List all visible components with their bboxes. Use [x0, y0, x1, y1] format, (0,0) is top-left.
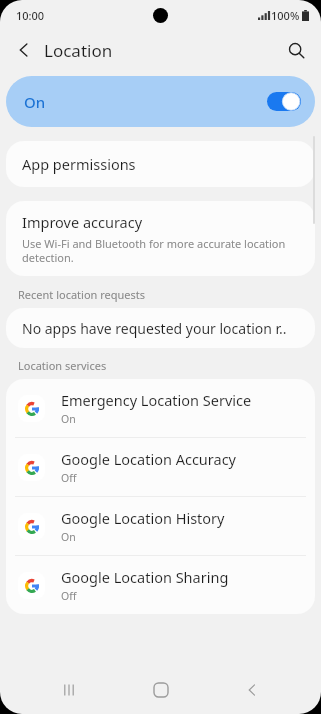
- staticText: On: [61, 530, 76, 544]
- button[interactable]: No apps have requested your location r..: [6, 308, 315, 348]
- staticText: Emergency Location Service: [61, 390, 252, 410]
- button[interactable]: Back: [6, 32, 42, 68]
- staticText: Recent location requests: [18, 287, 146, 302]
- staticText: Off: [61, 471, 77, 485]
- button[interactable]: Location on toggle: [267, 92, 301, 111]
- staticText: Location: [44, 39, 113, 62]
- button[interactable]: Home: [138, 667, 184, 713]
- button[interactable]: Improve accuracy: [6, 201, 315, 276]
- staticText: Location services: [18, 358, 107, 373]
- staticText: Use Wi-Fi and Bluetooth for more accurat…: [22, 236, 301, 265]
- button[interactable]: Recent apps: [46, 667, 92, 713]
- staticText: Improve accuracy: [22, 212, 143, 232]
- button[interactable]: Emergency Location Service: [6, 379, 315, 437]
- button[interactable]: Google Location History: [6, 497, 315, 555]
- button[interactable]: Back: [229, 667, 275, 713]
- button[interactable]: Google Location Sharing: [6, 556, 315, 614]
- staticText: Off: [61, 589, 77, 603]
- staticText: 10:00: [16, 8, 45, 23]
- staticText: On: [24, 92, 46, 112]
- staticText: No apps have requested your location r..: [22, 319, 287, 338]
- staticText: App permissions: [22, 154, 136, 174]
- button[interactable]: Search: [277, 31, 315, 69]
- staticText: Google Location Accuracy: [61, 449, 236, 469]
- staticText: Google Location Sharing: [61, 567, 229, 587]
- button[interactable]: On: [6, 76, 315, 127]
- button[interactable]: App permissions: [6, 141, 315, 187]
- button[interactable]: Google Location Accuracy: [6, 438, 315, 496]
- staticText: On: [61, 412, 76, 426]
- staticText: 100%: [271, 8, 300, 23]
- staticText: Google Location History: [61, 508, 225, 528]
